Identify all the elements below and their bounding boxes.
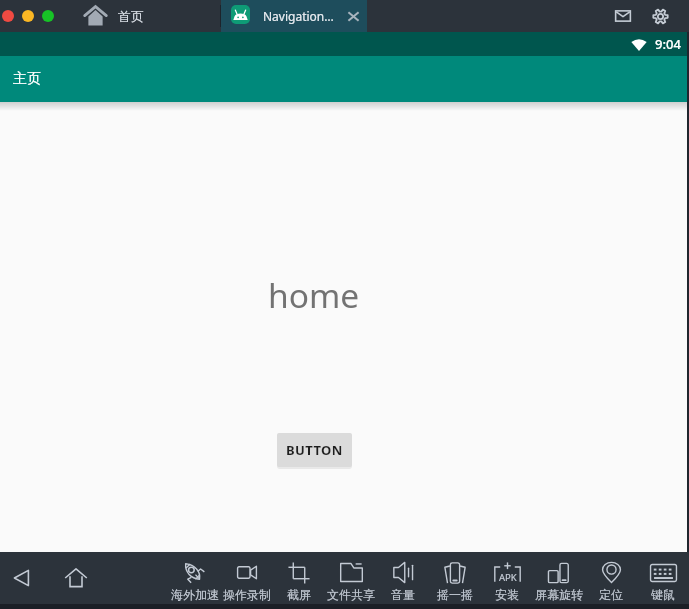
button[interactable]: Home bbox=[64, 566, 88, 590]
staticText: 海外加速 bbox=[171, 587, 219, 602]
staticText: BUTTON bbox=[286, 441, 343, 459]
button[interactable]: APK bbox=[481, 552, 533, 604]
button[interactable]: 首页 bbox=[84, 0, 144, 32]
button[interactable]: Back bbox=[12, 568, 32, 588]
button[interactable]: 海外加速 bbox=[168, 552, 221, 604]
staticText: 屏幕旋转 bbox=[535, 587, 583, 602]
staticText: 文件共享 bbox=[327, 587, 375, 602]
staticText: 安装 bbox=[495, 587, 519, 602]
button[interactable]: Navigation… bbox=[221, 0, 367, 32]
button[interactable]: Mail bbox=[615, 8, 631, 24]
button[interactable]: 屏幕旋转 bbox=[533, 552, 585, 604]
staticText: 音量 bbox=[391, 587, 415, 602]
staticText: 操作录制 bbox=[223, 587, 271, 602]
staticText: 首页 bbox=[118, 8, 144, 24]
button[interactable]: Close tab bbox=[346, 9, 361, 24]
button[interactable]: Maximize window bbox=[42, 10, 54, 22]
button[interactable]: Minimize window bbox=[22, 10, 34, 22]
staticText: APK bbox=[499, 571, 517, 584]
button[interactable]: Settings bbox=[652, 8, 669, 25]
button[interactable]: 摇一摇 bbox=[429, 552, 481, 604]
button[interactable]: 定位 bbox=[585, 552, 637, 604]
staticText: Navigation… bbox=[263, 8, 334, 24]
staticText: 截屏 bbox=[287, 587, 311, 602]
button[interactable]: 键鼠 bbox=[637, 552, 689, 604]
staticText: 键鼠 bbox=[651, 587, 675, 602]
button[interactable]: 音量 bbox=[377, 552, 429, 604]
button[interactable]: BUTTON bbox=[277, 433, 352, 467]
staticText: 主页 bbox=[13, 70, 41, 88]
button[interactable]: 操作录制 bbox=[221, 552, 273, 604]
staticText: 9:04 bbox=[655, 35, 681, 53]
staticText: 摇一摇 bbox=[437, 587, 473, 602]
staticText: 定位 bbox=[599, 587, 623, 602]
staticText: home bbox=[268, 272, 360, 318]
button[interactable]: 截屏 bbox=[273, 552, 325, 604]
button[interactable]: Close window bbox=[2, 10, 14, 22]
button[interactable]: 文件共享 bbox=[325, 552, 377, 604]
